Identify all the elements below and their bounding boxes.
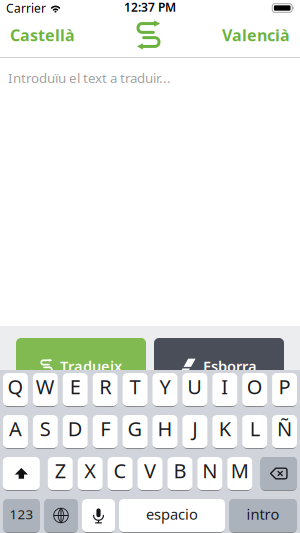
- staticText: Carrier: [6, 0, 46, 16]
- button[interactable]: H: [152, 415, 177, 449]
- button[interactable]: K: [212, 415, 237, 449]
- staticText: Z: [55, 457, 66, 484]
- staticText: Tradueix: [60, 356, 122, 376]
- staticText: N: [202, 457, 217, 484]
- staticText: E: [70, 373, 81, 400]
- staticText: Valencià: [222, 24, 290, 46]
- button[interactable]: U: [182, 373, 207, 407]
- staticText: M: [231, 457, 249, 484]
- staticText: espacio: [146, 504, 198, 524]
- staticText: D: [68, 415, 83, 442]
- button[interactable]: V: [137, 457, 162, 491]
- staticText: S: [40, 415, 51, 442]
- button[interactable]: P: [272, 373, 297, 407]
- button[interactable]: X: [78, 457, 103, 491]
- button[interactable]: R: [93, 373, 118, 407]
- staticText: T: [129, 373, 140, 400]
- staticText: H: [157, 415, 172, 442]
- staticText: I: [221, 373, 228, 400]
- button[interactable]: Next keyboard: [44, 499, 78, 533]
- button[interactable]: I: [212, 373, 237, 407]
- button[interactable]: Dictate: [82, 499, 115, 533]
- staticText: Y: [159, 373, 170, 400]
- staticText: J: [192, 415, 197, 442]
- button[interactable]: C: [108, 457, 132, 491]
- button[interactable]: F: [93, 415, 118, 449]
- button[interactable]: Tradueix: [16, 338, 146, 394]
- button[interactable]: N: [197, 457, 222, 491]
- staticText: intro: [246, 504, 279, 524]
- staticText: Castellà: [10, 24, 75, 46]
- staticText: P: [279, 373, 291, 400]
- staticText: 123: [9, 505, 33, 523]
- button[interactable]: J: [182, 415, 207, 449]
- staticText: B: [173, 457, 186, 484]
- button[interactable]: Esborra: [154, 338, 284, 394]
- button[interactable]: L: [242, 415, 267, 449]
- button[interactable]: O: [242, 373, 267, 407]
- button[interactable]: Intercanvia els idiomes: [135, 19, 162, 51]
- button[interactable]: A: [3, 415, 28, 449]
- staticText: R: [99, 373, 111, 400]
- button[interactable]: D: [63, 415, 88, 449]
- button[interactable]: S: [33, 415, 58, 449]
- staticText: A: [9, 415, 22, 442]
- button[interactable]: Delete: [260, 457, 297, 491]
- staticText: W: [36, 373, 55, 400]
- staticText: X: [84, 457, 96, 484]
- button[interactable]: W: [33, 373, 58, 407]
- staticText: 12:37 PM: [124, 0, 176, 15]
- staticText: L: [250, 415, 260, 442]
- staticText: U: [187, 373, 202, 400]
- staticText: Ñ: [277, 415, 292, 442]
- button[interactable]: Z: [48, 457, 73, 491]
- staticText: Esborra: [203, 356, 257, 376]
- button[interactable]: Valencià: [222, 24, 290, 46]
- staticText: V: [144, 457, 156, 484]
- button[interactable]: G: [123, 415, 147, 449]
- button[interactable]: Ñ: [272, 415, 297, 449]
- button[interactable]: espacio: [119, 499, 225, 533]
- button[interactable]: 123: [3, 499, 40, 533]
- button[interactable]: E: [63, 373, 88, 407]
- button[interactable]: M: [227, 457, 252, 491]
- staticText: O: [247, 373, 263, 400]
- staticText: Introduïu el text a traduir...: [8, 69, 171, 87]
- staticText: Q: [7, 373, 23, 400]
- button[interactable]: Castellà: [10, 24, 75, 46]
- button[interactable]: intro: [229, 499, 297, 533]
- button[interactable]: Y: [152, 373, 177, 407]
- staticText: K: [219, 415, 231, 442]
- button[interactable]: T: [123, 373, 147, 407]
- button[interactable]: B: [167, 457, 192, 491]
- staticText: F: [100, 415, 110, 442]
- button[interactable]: Q: [3, 373, 28, 407]
- staticText: G: [127, 415, 142, 442]
- button[interactable]: Shift: [3, 457, 40, 491]
- staticText: C: [114, 457, 127, 484]
